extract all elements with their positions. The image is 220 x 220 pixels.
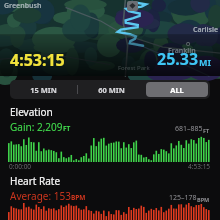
staticText: Carlisle bbox=[193, 25, 219, 35]
staticText: Gain: 2,209 bbox=[10, 120, 63, 134]
staticText: FT bbox=[63, 124, 71, 133]
staticText: Average: 153 bbox=[10, 189, 71, 203]
staticText: Elevation bbox=[10, 105, 53, 119]
button[interactable]: 60 MIN bbox=[80, 82, 142, 97]
staticText: BPM bbox=[71, 193, 86, 202]
button[interactable]: Map layers bbox=[127, 1, 138, 11]
staticText: 0:00:00 bbox=[9, 162, 32, 171]
button[interactable]: Heart Rate bbox=[0, 174, 220, 220]
staticText: Forest Park bbox=[118, 64, 150, 72]
staticText: 4:53:15 bbox=[188, 162, 211, 171]
staticText: 681–885 bbox=[175, 124, 203, 134]
staticText: ALL bbox=[170, 85, 184, 95]
staticText: Franklin bbox=[168, 46, 196, 56]
staticText: 4:53:15 bbox=[10, 49, 65, 71]
staticText: 60 MIN bbox=[98, 85, 125, 95]
button[interactable]: ALL bbox=[146, 82, 208, 97]
button[interactable]: Elevation bbox=[0, 105, 220, 171]
staticText: 15 MIN bbox=[30, 85, 57, 95]
staticText: 125–178 bbox=[169, 193, 197, 203]
button[interactable]: Route map bbox=[0, 0, 220, 76]
staticText: Heart Rate bbox=[10, 174, 61, 188]
staticText: BPM bbox=[197, 196, 210, 203]
staticText: Greenbush bbox=[4, 1, 42, 11]
staticText: 25.33 bbox=[157, 48, 199, 70]
staticText: FT bbox=[203, 127, 210, 134]
button[interactable]: 15 MIN bbox=[12, 82, 75, 97]
staticText: MI bbox=[199, 56, 211, 68]
